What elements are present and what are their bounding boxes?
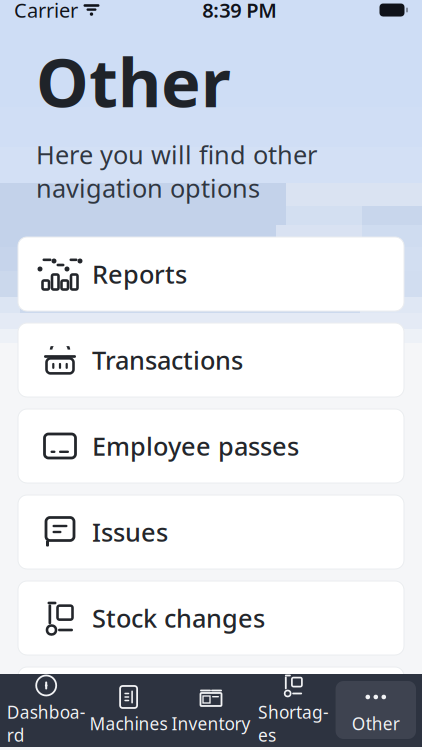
staticText: Transactions — [92, 343, 243, 377]
button[interactable]: Other — [336, 681, 416, 739]
staticText: Issues — [92, 515, 168, 549]
button[interactable]: Settings — [18, 667, 404, 741]
button[interactable]: Employee passes — [18, 409, 404, 483]
button[interactable]: Transactions — [18, 323, 404, 397]
staticText: Other — [36, 37, 231, 125]
staticText: Employee passes — [92, 429, 299, 463]
staticText: Stock changes — [92, 601, 265, 635]
button[interactable]: Shortages — [253, 681, 334, 739]
staticText: Shortages — [258, 700, 329, 746]
staticText: Carrier — [14, 0, 78, 23]
button[interactable]: Dashboard — [6, 681, 86, 739]
staticText: Here you will find other navigation opti… — [36, 137, 317, 205]
button[interactable]: Machines — [88, 681, 169, 739]
button[interactable]: Reports — [18, 237, 404, 311]
staticText: Machines — [90, 712, 168, 735]
button[interactable]: Issues — [18, 495, 404, 569]
staticText: Inventory — [171, 712, 250, 735]
staticText: Settings — [92, 687, 192, 721]
button[interactable]: Inventory — [171, 681, 251, 739]
button[interactable]: Stock changes — [18, 581, 404, 655]
staticText: Reports — [92, 257, 187, 291]
staticText: 8:39 PM — [202, 0, 277, 23]
staticText: Dashboard — [7, 700, 86, 746]
staticText: Other — [352, 712, 400, 735]
